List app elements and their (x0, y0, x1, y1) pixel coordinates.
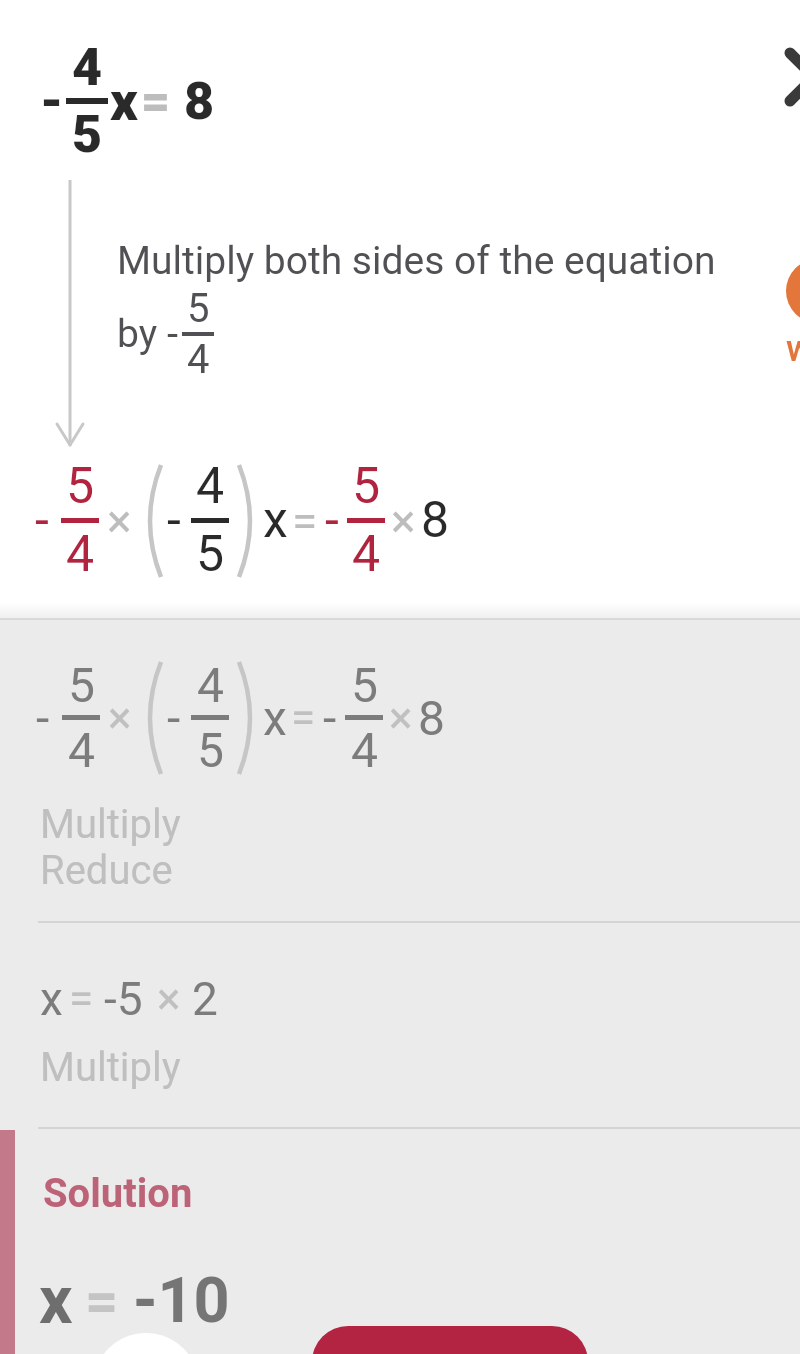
staticText: - (40, 71, 64, 132)
staticText: x (263, 690, 287, 746)
staticText: Reduce (40, 847, 173, 894)
staticText: 4 (68, 722, 95, 778)
staticText: x (110, 70, 138, 133)
staticText: 4 (351, 722, 378, 778)
staticText: = (291, 692, 316, 744)
button[interactable] (784, 40, 800, 114)
staticText: 4 (197, 657, 224, 713)
staticText: x (39, 1262, 73, 1339)
staticText: - (323, 690, 337, 746)
staticText: w (786, 328, 800, 370)
staticText: 4 (66, 525, 95, 584)
staticText: = (141, 72, 171, 131)
staticText: 5 (196, 525, 225, 584)
staticText: x (263, 491, 288, 550)
staticText: 5 (68, 657, 95, 713)
staticText: - (36, 690, 50, 746)
button[interactable] (786, 259, 800, 323)
staticText: - (325, 491, 339, 550)
staticText: 5 (197, 722, 224, 778)
staticText: - (167, 311, 179, 358)
staticText: 2 (192, 972, 218, 1026)
staticText: - (167, 690, 181, 746)
staticText: Multiply (40, 801, 181, 848)
staticText: 8 (418, 690, 445, 746)
button[interactable] (93, 1333, 199, 1354)
staticText: × (107, 494, 132, 548)
staticText: × (108, 692, 132, 744)
staticText: 5 (352, 457, 381, 516)
staticText: 5 (351, 657, 378, 713)
staticText: 8 (184, 71, 215, 132)
staticText: × (157, 973, 181, 1025)
button[interactable] (312, 1326, 588, 1354)
staticText: -10 (133, 1264, 230, 1338)
staticText: 4 (72, 37, 103, 98)
staticText: = (85, 1267, 119, 1335)
staticText: 5 (187, 285, 210, 332)
staticText: = (292, 494, 318, 548)
staticText: Multiply both sides of the equation (117, 238, 716, 284)
staticText: x (40, 972, 63, 1026)
staticText: 5 (66, 457, 95, 516)
staticText: 4 (352, 525, 381, 584)
staticText: 5 (72, 104, 103, 165)
staticText: 4 (187, 336, 210, 383)
staticText: = (69, 973, 94, 1025)
staticText: 4 (196, 457, 225, 516)
staticText: Multiply (40, 1044, 181, 1091)
staticText: 8 (421, 491, 450, 550)
staticText: - (35, 491, 49, 550)
staticText: Solution (43, 1170, 193, 1217)
staticText: by (117, 311, 167, 357)
staticText: - (167, 491, 181, 550)
staticText: -5 (104, 972, 143, 1026)
staticText: × (391, 494, 416, 548)
staticText: × (389, 692, 413, 744)
